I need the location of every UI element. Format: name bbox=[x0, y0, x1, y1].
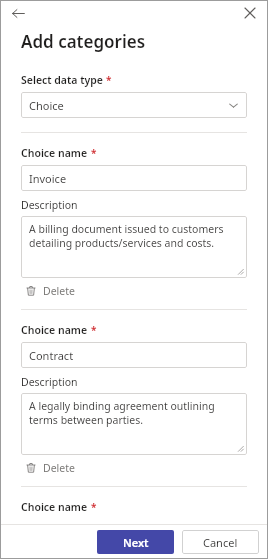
button[interactable]: Choice bbox=[21, 92, 247, 118]
staticText: Cancel bbox=[203, 535, 238, 550]
button[interactable]: Delete bbox=[21, 459, 81, 477]
button[interactable]: Back bbox=[7, 2, 29, 24]
staticText: Select data type bbox=[21, 73, 103, 87]
staticText: A legally binding agreement outlining bbox=[29, 399, 215, 413]
staticText: A billing document issued to customers bbox=[29, 222, 224, 236]
button[interactable]: Next bbox=[97, 530, 174, 554]
staticText: Choice name bbox=[21, 146, 88, 160]
button[interactable]: Contract bbox=[21, 342, 247, 368]
staticText: Contract bbox=[29, 348, 74, 363]
staticText: Delete bbox=[43, 284, 75, 298]
staticText: Next bbox=[123, 535, 149, 550]
staticText: * bbox=[106, 73, 112, 87]
staticText: Description bbox=[21, 198, 78, 212]
button[interactable]: Delete bbox=[21, 282, 81, 300]
staticText: * bbox=[91, 323, 97, 337]
staticText: terms between parties. bbox=[29, 413, 144, 427]
staticText: Description bbox=[21, 375, 78, 389]
staticText: Choice bbox=[29, 98, 64, 113]
staticText: * bbox=[91, 500, 97, 514]
staticText: Add categories bbox=[21, 30, 146, 53]
staticText: Choice name bbox=[21, 323, 88, 337]
button[interactable]: A legally binding agreement outlining bbox=[21, 393, 247, 455]
staticText: Choice name bbox=[21, 500, 88, 514]
staticText: detailing products/services and costs. bbox=[29, 236, 215, 250]
staticText: * bbox=[91, 146, 97, 160]
staticText: Delete bbox=[43, 461, 75, 475]
button[interactable]: Close bbox=[240, 3, 260, 23]
button[interactable]: Cancel bbox=[182, 530, 259, 554]
button[interactable]: A billing document issued to customers bbox=[21, 216, 247, 278]
button[interactable]: Invoice bbox=[21, 165, 247, 191]
staticText: Invoice bbox=[29, 171, 67, 186]
